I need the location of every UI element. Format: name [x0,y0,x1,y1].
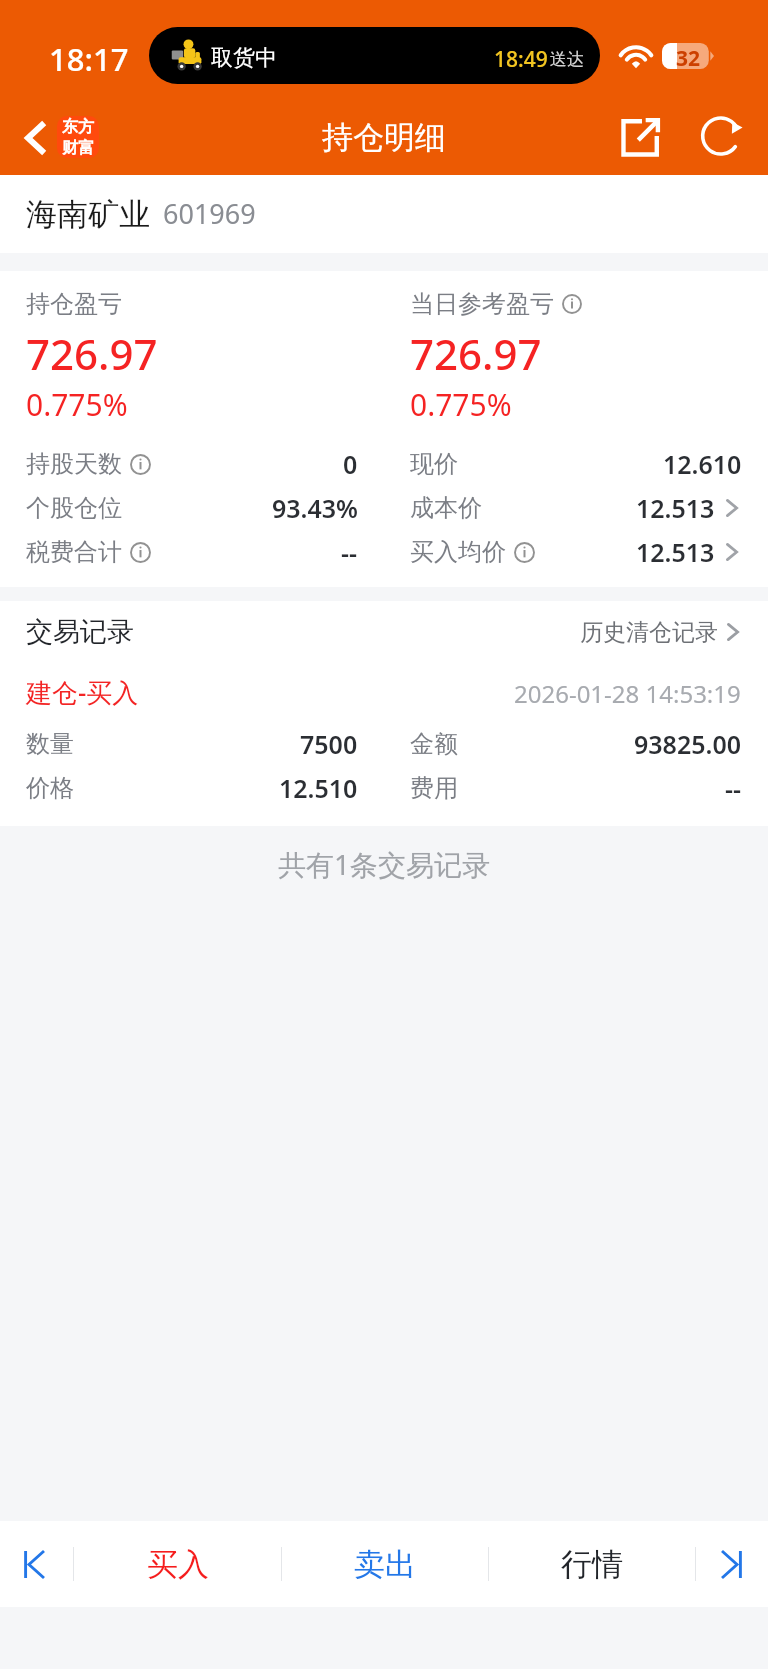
staticText: 持仓盈亏 [26,289,122,319]
staticText: 12.513 [636,491,715,525]
button[interactable]: 持股天数 [0,442,384,486]
staticText: 个股仓位 [26,493,122,523]
staticText: 持仓明细 [322,118,446,157]
staticText: 财富 [62,138,94,158]
button[interactable]: Refresh [692,106,752,166]
staticText: 12.510 [279,771,358,805]
staticText: 93825.00 [634,727,742,761]
staticText: 0 [343,447,358,481]
staticText: 601969 [163,195,256,232]
button[interactable]: Back [10,112,60,163]
button[interactable]: 现价 [384,442,768,486]
button[interactable]: 买入均价 [384,530,768,574]
staticText: 93.43% [272,491,358,525]
staticText: 0.775% [410,384,512,425]
button[interactable]: 个股仓位 [0,486,384,530]
staticText: 32 [676,44,701,73]
staticText: 数量 [26,729,74,759]
staticText: 18:49 [494,45,548,74]
staticText: 726.97 [26,325,158,382]
staticText: 买入 [147,1545,209,1584]
button[interactable]: 买入 [74,1521,281,1607]
staticText: 东方 [62,117,94,137]
staticText: 海南矿业 [26,195,150,234]
staticText: 12.513 [636,535,715,569]
staticText: 卖出 [354,1545,416,1584]
button[interactable]: Share [610,107,670,167]
button[interactable]: Last [696,1521,768,1607]
staticText: 12.610 [663,447,742,481]
staticText: 价格 [26,773,74,803]
button[interactable]: 成本价 [384,486,768,530]
staticText: 成本价 [410,493,482,523]
staticText: 历史清仓记录 [580,618,718,647]
staticText: 费用 [410,773,458,803]
button[interactable]: First [0,1521,73,1607]
button[interactable]: 税费合计 [0,530,384,574]
staticText: 持股天数 [26,449,122,479]
staticText: 税费合计 [26,537,122,567]
staticText: 行情 [561,1545,623,1584]
staticText: 金额 [410,729,458,759]
button[interactable]: 历史清仓记录 [566,610,765,654]
button[interactable]: 卖出 [282,1521,488,1607]
staticText: -- [725,771,742,805]
staticText: 取货中 [211,44,277,72]
staticText: 送达 [550,49,584,70]
staticText: 2026-01-28 14:53:19 [514,677,741,710]
staticText: 当日参考盈亏 [410,289,554,319]
staticText: 0.775% [26,384,128,425]
staticText: 726.97 [410,325,542,382]
staticText: 交易记录 [26,615,134,649]
button[interactable]: 行情 [489,1521,695,1607]
staticText: 7500 [300,727,358,761]
staticText: -- [341,535,358,569]
button[interactable]: East Money [57,116,99,158]
staticText: 18:17 [49,38,129,80]
staticText: 买入均价 [410,537,506,567]
staticText: 现价 [410,449,458,479]
staticText: 共有1条交易记录 [0,845,768,883]
staticText: 建仓-买入 [26,674,139,710]
